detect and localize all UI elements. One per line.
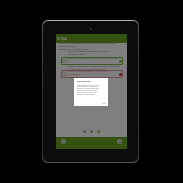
staticText: Project Management Process concepts are … [67, 57, 118, 65]
staticText: Which of the following statements about … [58, 42, 125, 51]
button[interactable]: Next [117, 139, 122, 144]
button[interactable]: D [61, 70, 123, 78]
staticText: The concepts of the Project Management P… [77, 84, 100, 96]
staticText: Project Management Process concepts are … [68, 65, 123, 71]
staticText: A [64, 52, 66, 55]
staticText: There are no right answers. The project … [67, 70, 118, 78]
button[interactable]: OK [102, 102, 106, 105]
button[interactable]: Menu [57, 37, 60, 40]
staticText: OK [102, 102, 106, 105]
staticText: D [63, 73, 65, 76]
staticText: Explanation [77, 80, 91, 83]
button[interactable]: Page [90, 130, 93, 133]
button[interactable]: Menu [57, 34, 127, 43]
staticText: The recommended standards, rules and man… [68, 50, 123, 56]
staticText: B [63, 60, 65, 63]
button[interactable]: Page [83, 130, 86, 133]
staticText: C [64, 67, 66, 70]
button[interactable]: Page [97, 130, 100, 133]
button[interactable]: B [61, 57, 123, 65]
button[interactable]: Previous [61, 139, 66, 144]
staticText: Quiz [61, 37, 67, 41]
